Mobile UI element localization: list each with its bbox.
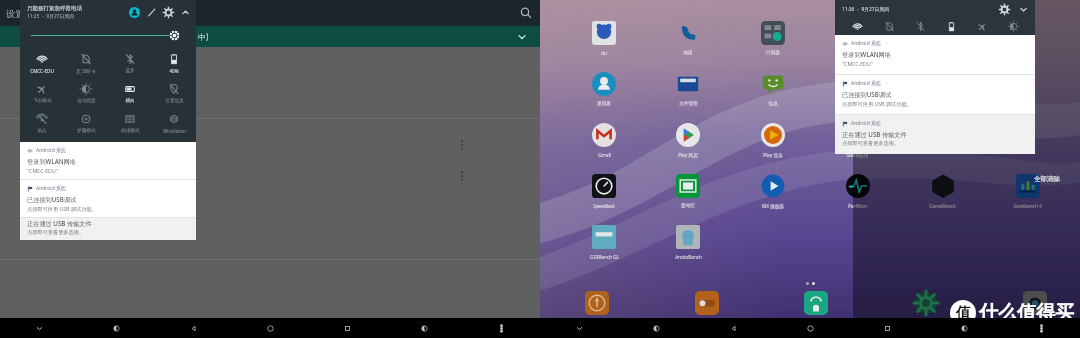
staticText: SIM卡应用 xyxy=(846,152,869,158)
button[interactable]: SIM卡应用 xyxy=(815,120,900,171)
button[interactable]: 飞行模式 xyxy=(20,78,64,108)
staticText: "CMCC-EDU" xyxy=(842,60,873,67)
staticText: GFXBench GL xyxy=(590,254,619,260)
button[interactable]: More xyxy=(1003,318,1080,338)
button[interactable]: 位置信息 xyxy=(152,78,196,108)
button[interactable]: 护眼模式 xyxy=(64,108,108,138)
button[interactable] xyxy=(31,29,191,41)
button[interactable]: Android 系统 xyxy=(835,35,1035,74)
button[interactable]: Back xyxy=(695,318,772,338)
button[interactable]: Collapse xyxy=(540,318,618,338)
staticText: 值 xyxy=(956,304,971,323)
button[interactable]: PerfMon xyxy=(815,171,900,222)
button[interactable]: Edit xyxy=(146,7,157,18)
button[interactable]: 通讯录 xyxy=(562,69,646,120)
button[interactable]: GFXBench GL xyxy=(562,222,646,273)
button[interactable]: 正在通过 USB 传输文件 xyxy=(20,218,196,240)
staticText: 电话 xyxy=(683,50,693,56)
button[interactable]: Play 音乐 xyxy=(730,120,815,171)
button[interactable]: Android 系统 xyxy=(20,142,196,179)
button[interactable]: Contrast2 xyxy=(386,318,463,338)
staticText: 飞行模式 xyxy=(33,98,52,104)
button[interactable] xyxy=(873,18,905,35)
button[interactable]: 爱奇艺 xyxy=(646,171,730,222)
button[interactable]: 横向 xyxy=(108,78,152,108)
button[interactable]: Gmail xyxy=(562,120,646,171)
staticText: 阅读模式 xyxy=(121,128,140,134)
button[interactable]: App 22 xyxy=(801,288,831,318)
staticText: 全部清除 xyxy=(1034,175,1060,183)
button[interactable]: Android 系统 xyxy=(20,180,196,217)
staticText: 只能拨打紧急呼救电话 xyxy=(27,5,82,12)
button[interactable] xyxy=(841,18,873,35)
staticText: 护眼模式 xyxy=(77,128,96,134)
button[interactable]: Android 系统 xyxy=(835,75,1035,114)
button[interactable]: Contrast2 xyxy=(926,318,1003,338)
button[interactable]: Speedtest xyxy=(562,171,646,222)
button[interactable] xyxy=(936,18,967,35)
button[interactable]: CMCC-EDU xyxy=(20,48,64,78)
button[interactable]: Back xyxy=(155,318,232,338)
button[interactable]: Contrast xyxy=(78,318,155,338)
staticText: 计算器 xyxy=(766,50,780,56)
staticText: 蓝牙 xyxy=(125,68,135,74)
button[interactable]: Home xyxy=(232,318,309,338)
button[interactable]: Settings xyxy=(163,7,174,18)
staticText: 爱奇艺 xyxy=(681,203,695,209)
button[interactable]: 阅读模式 xyxy=(108,108,152,138)
button[interactable] xyxy=(905,18,936,35)
staticText: 设置 xyxy=(6,8,24,19)
staticText: 登录到WLAN网络 xyxy=(27,157,76,165)
staticText: 横向 xyxy=(125,98,135,104)
staticText: 40% xyxy=(169,68,179,74)
button[interactable]: 信息 xyxy=(730,69,815,120)
button[interactable]: App 20 xyxy=(582,288,612,318)
button[interactable]: 热点 xyxy=(20,108,64,138)
button[interactable]: GameBench xyxy=(900,171,985,222)
button[interactable]: 自动亮度 xyxy=(64,78,108,108)
button[interactable]: Account xyxy=(129,7,140,18)
button[interactable]: MiraVision xyxy=(152,108,196,138)
button[interactable]: 无 SIM 卡 xyxy=(64,48,108,78)
button[interactable]: App 24 xyxy=(1020,288,1050,318)
button[interactable]: Settings xyxy=(999,4,1010,15)
button[interactable]: App 23 xyxy=(911,288,941,318)
button[interactable]: MX 播放器 xyxy=(730,171,815,222)
staticText: 应用锁 xyxy=(851,101,865,107)
button[interactable]: Expand xyxy=(516,31,528,43)
button[interactable]: Expand xyxy=(1018,4,1029,15)
button[interactable] xyxy=(967,18,998,35)
button[interactable]: 应用锁 xyxy=(815,69,900,120)
button[interactable]: 40% xyxy=(152,48,196,78)
button[interactable]: Play 商店 xyxy=(646,120,730,171)
staticText: 11:25 ・ 9月27日周四 xyxy=(27,13,74,20)
button[interactable]: AndroBench xyxy=(646,222,730,273)
staticText: MX 播放器 xyxy=(762,203,784,209)
button[interactable]: Home xyxy=(772,318,849,338)
button[interactable]: Geekbench 4 xyxy=(985,171,1070,222)
button[interactable]: More xyxy=(463,318,540,338)
button[interactable]: Android 系统 xyxy=(835,115,1035,154)
button[interactable] xyxy=(998,18,1029,35)
staticText: 11:26 ・ 9月27日周四 xyxy=(842,6,889,13)
button[interactable]: Collapse xyxy=(0,318,78,338)
button[interactable]: Collapse xyxy=(180,7,191,18)
button[interactable]: App 21 xyxy=(692,288,722,318)
button[interactable]: 录音机 xyxy=(815,18,900,69)
staticText: 位置信息 xyxy=(165,98,184,104)
button[interactable]: 文件管理 xyxy=(646,69,730,120)
button[interactable]: 蓝牙 xyxy=(108,48,152,78)
staticText: Android 系统 xyxy=(36,147,67,154)
staticText: 点按即可停用 USB 调试功能。 xyxy=(842,100,912,107)
staticText: 登录到WLAN网络 xyxy=(842,50,891,58)
staticText: Android 系统 xyxy=(36,185,67,192)
button[interactable]: Recents xyxy=(309,318,386,338)
button[interactable]: 电话 xyxy=(646,18,730,69)
button[interactable]: Recents xyxy=(849,318,926,338)
button[interactable]: 计算器 xyxy=(730,18,815,69)
staticText: Android 系统 xyxy=(851,40,882,47)
button[interactable]: du xyxy=(562,18,646,69)
staticText: PerfMon xyxy=(848,203,867,209)
button[interactable]: Contrast xyxy=(618,318,695,338)
button[interactable]: Search xyxy=(519,6,533,20)
